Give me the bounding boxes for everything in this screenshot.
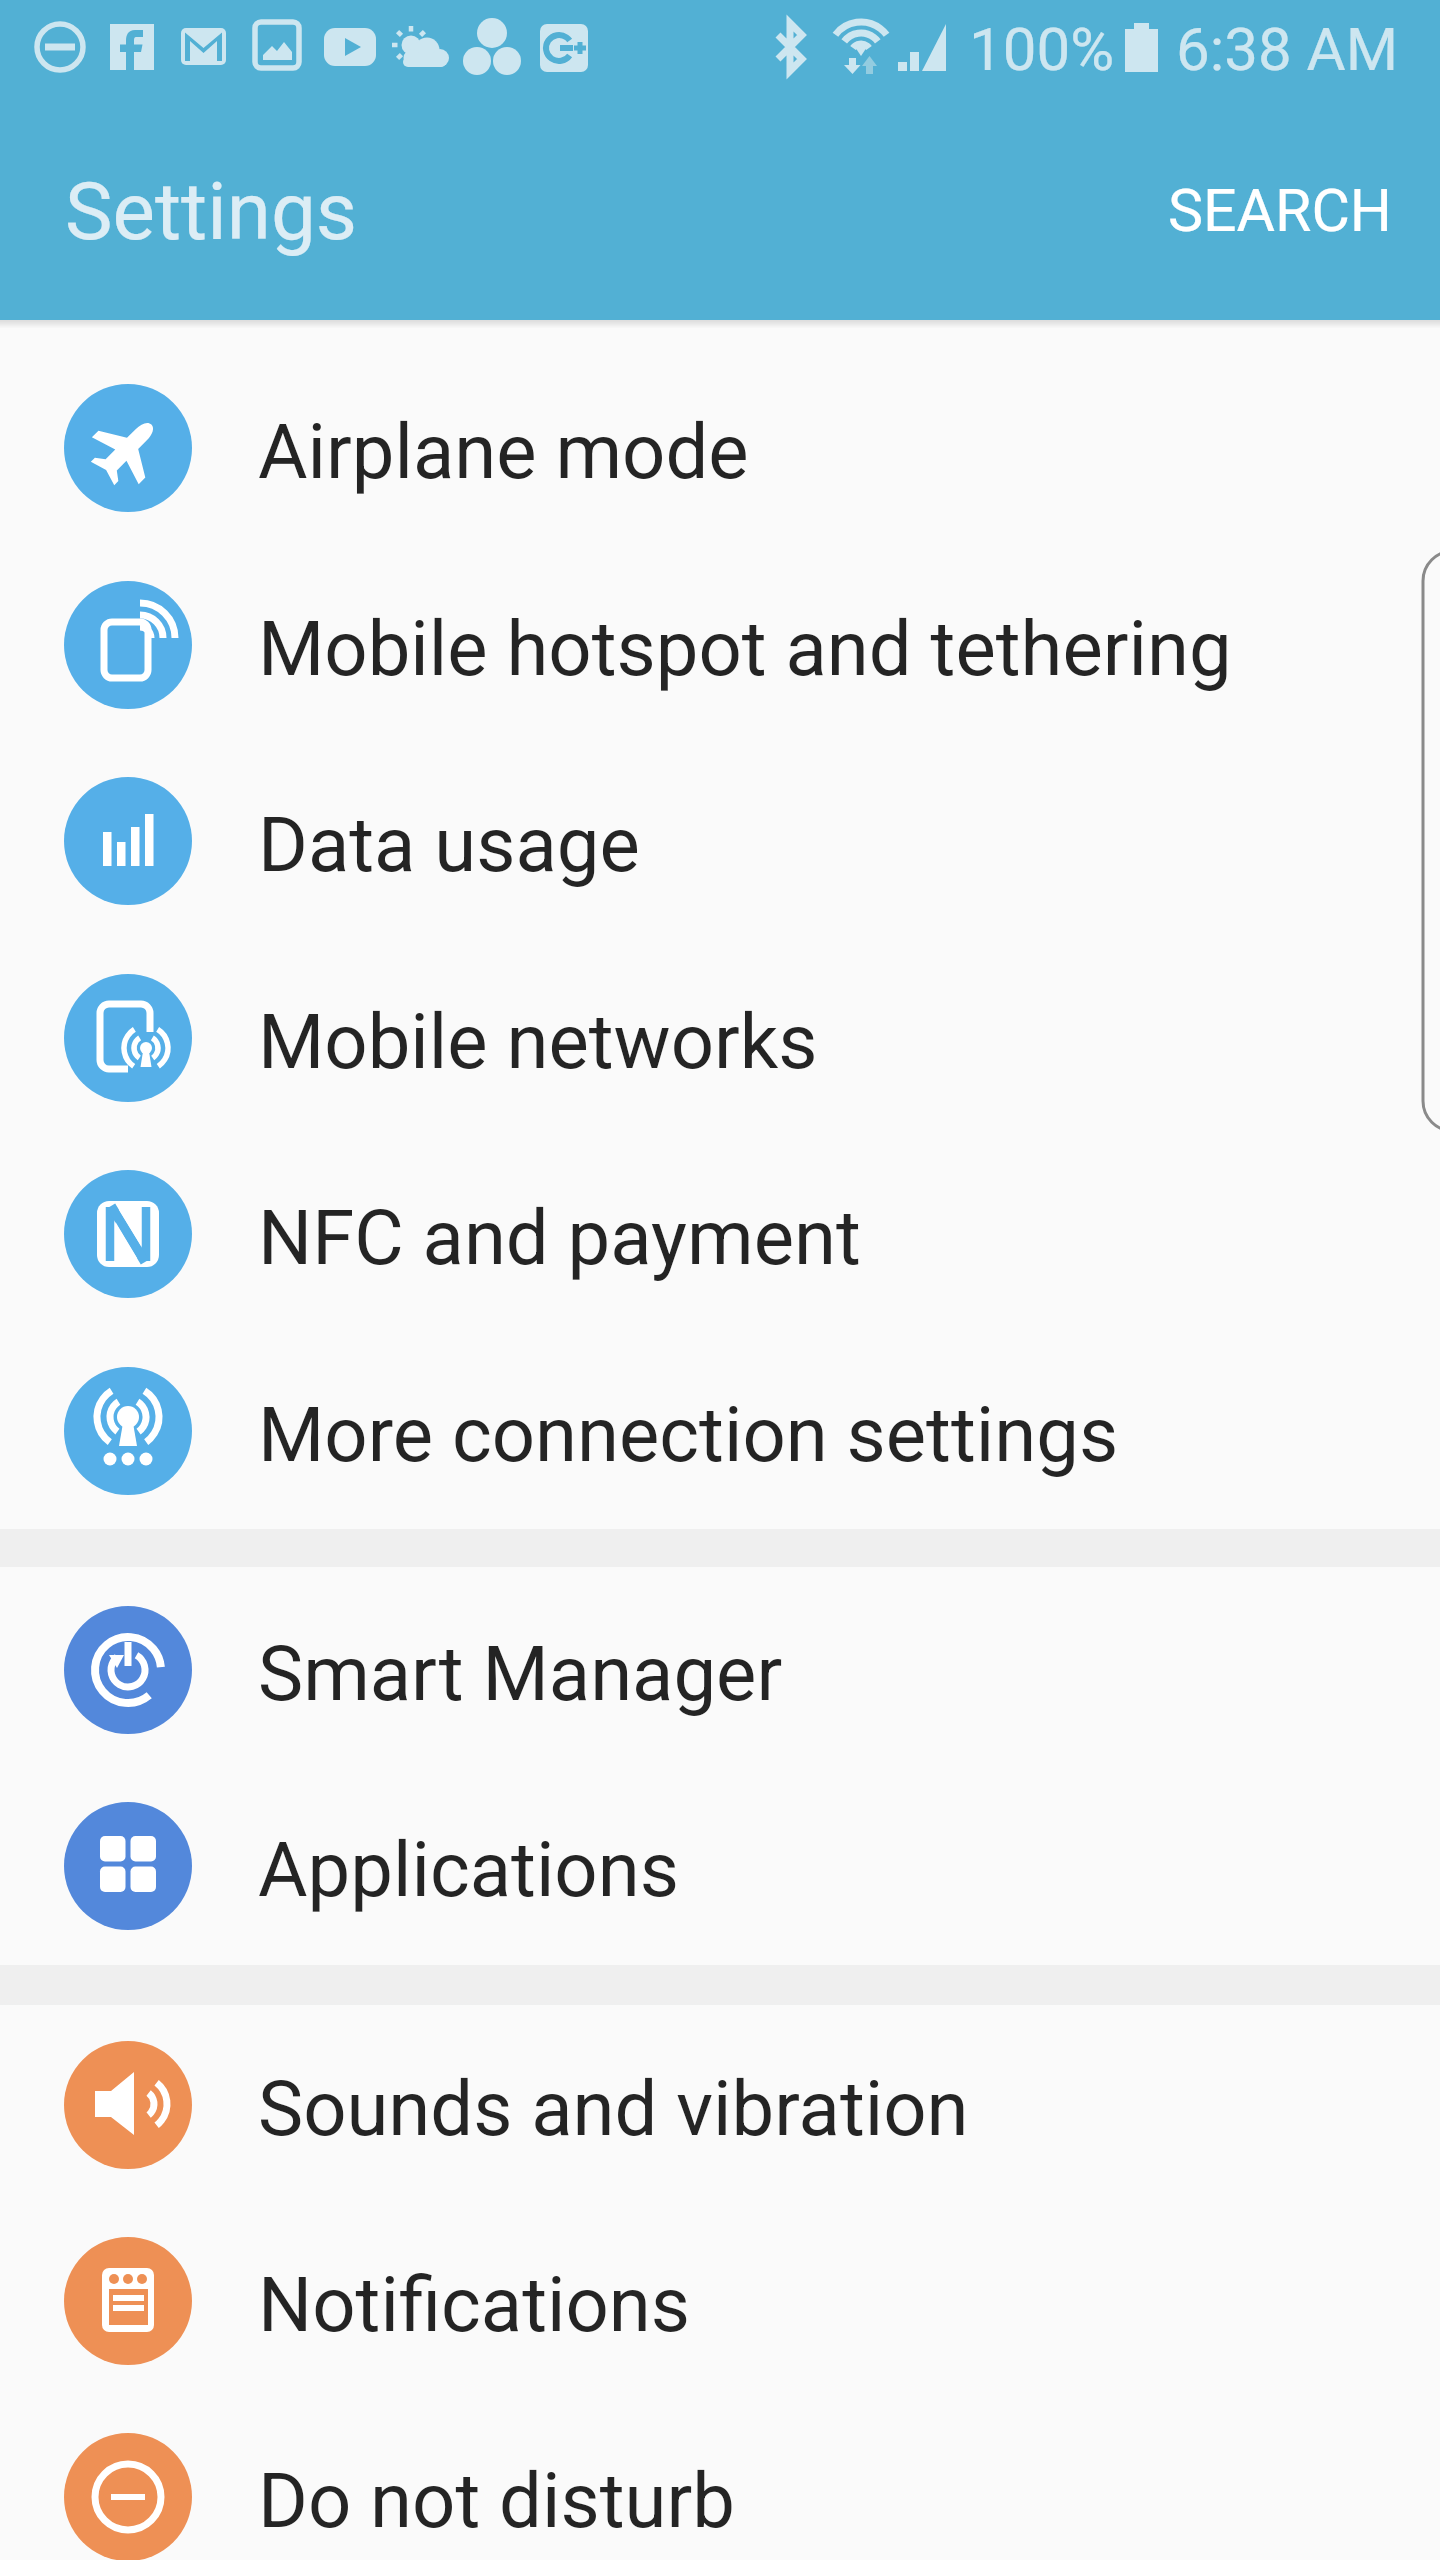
staticText: Sounds and vibration (258, 2064, 969, 2153)
button[interactable]: Notifications (0, 2203, 1440, 2399)
button[interactable]: NFC and payment (0, 1136, 1440, 1332)
staticText: Notifications (258, 2260, 691, 2349)
button[interactable]: More connection settings (0, 1333, 1440, 1529)
staticText: SEARCH (1168, 176, 1392, 245)
staticText: Mobile hotspot and tethering (258, 604, 1232, 693)
button[interactable]: Search settings (1123, 121, 1437, 299)
staticText: Settings (65, 165, 358, 259)
staticText: Mobile networks (258, 997, 818, 1086)
staticText: NFC and payment (258, 1193, 861, 1282)
button[interactable]: Applications (0, 1768, 1440, 1964)
button[interactable]: Smart Manager (0, 1572, 1440, 1768)
button[interactable]: Do not disturb (0, 2399, 1440, 2560)
staticText: 6:38 AM (1176, 14, 1399, 84)
staticText: Applications (258, 1825, 679, 1914)
staticText: Airplane mode (258, 407, 749, 496)
staticText: Do not disturb (258, 2456, 735, 2545)
staticText: 100% (969, 14, 1115, 84)
button[interactable]: Mobile hotspot and tethering (0, 547, 1440, 743)
button[interactable]: Data usage (0, 743, 1440, 939)
button[interactable]: Airplane mode (0, 350, 1440, 546)
staticText: Smart Manager (258, 1629, 783, 1718)
staticText: Data usage (258, 800, 640, 889)
button[interactable]: Sounds and vibration (0, 2007, 1440, 2203)
staticText: More connection settings (258, 1390, 1119, 1479)
button[interactable]: Mobile networks (0, 940, 1440, 1136)
